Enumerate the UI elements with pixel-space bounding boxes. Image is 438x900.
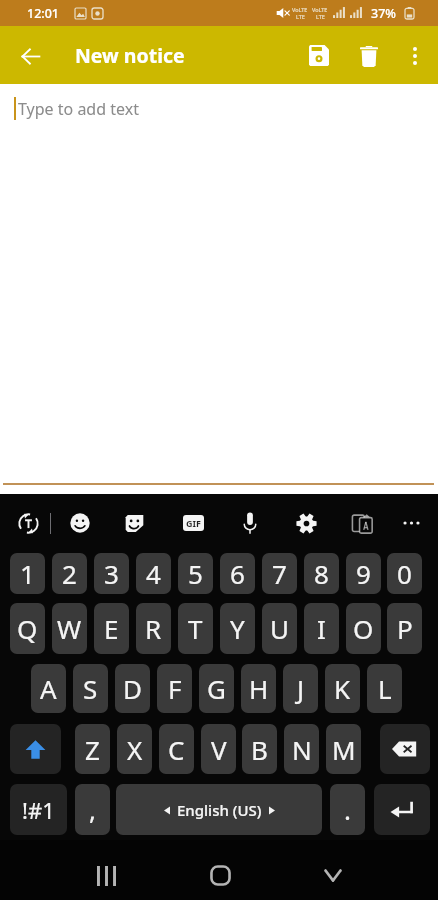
- button[interactable]: R: [136, 603, 171, 654]
- staticText: 1: [20, 556, 35, 591]
- button[interactable]: K: [325, 664, 360, 713]
- staticText: VoLTE: [312, 6, 328, 13]
- staticText: !#1: [22, 795, 55, 825]
- button[interactable]: E: [94, 603, 129, 654]
- button[interactable]: Settings: [286, 503, 326, 543]
- button[interactable]: 4: [136, 553, 171, 594]
- button[interactable]: Shift: [10, 724, 61, 774]
- staticText: New notice: [75, 42, 185, 69]
- button[interactable]: Voice input: [230, 503, 270, 543]
- button[interactable]: Emoji: [60, 503, 100, 543]
- button[interactable]: Z: [75, 724, 110, 774]
- button[interactable]: D: [115, 664, 150, 713]
- button[interactable]: G: [199, 664, 234, 713]
- button[interactable]: 1: [10, 553, 45, 594]
- staticText: .: [344, 792, 351, 827]
- button[interactable]: More: [391, 503, 431, 543]
- button[interactable]: U: [262, 603, 297, 654]
- button[interactable]: Delete: [346, 33, 392, 79]
- button[interactable]: More options: [393, 34, 437, 78]
- staticText: I: [317, 611, 326, 646]
- button[interactable]: S: [73, 664, 108, 713]
- button[interactable]: B: [242, 724, 277, 774]
- staticText: GIF: [186, 517, 201, 529]
- staticText: VoLTE: [292, 6, 308, 13]
- staticText: 0: [397, 556, 412, 591]
- button[interactable]: 8: [304, 553, 339, 594]
- staticText: LTE: [316, 13, 325, 20]
- staticText: 12:01: [27, 5, 60, 22]
- button[interactable]: Navigate up: [6, 32, 54, 80]
- staticText: U: [270, 611, 290, 646]
- button[interactable]: Enter: [374, 784, 430, 835]
- button[interactable]: V: [201, 724, 236, 774]
- button[interactable]: ,: [75, 784, 110, 835]
- staticText: Y: [230, 611, 245, 646]
- button[interactable]: X: [117, 724, 152, 774]
- button[interactable]: C: [159, 724, 194, 774]
- staticText: 5: [188, 556, 203, 591]
- staticText: G: [207, 671, 226, 706]
- staticText: S: [83, 671, 98, 706]
- button[interactable]: English (US): [116, 784, 322, 835]
- staticText: L: [378, 671, 392, 706]
- button[interactable]: Backspace: [380, 724, 430, 774]
- button[interactable]: Stickers: [114, 503, 154, 543]
- staticText: 3: [104, 556, 119, 591]
- button[interactable]: 5: [178, 553, 213, 594]
- button[interactable]: J: [283, 664, 318, 713]
- staticText: Z: [85, 732, 100, 767]
- button[interactable]: M: [326, 724, 361, 774]
- button[interactable]: N: [284, 724, 319, 774]
- staticText: B: [251, 732, 268, 767]
- button[interactable]: I: [304, 603, 339, 654]
- staticText: D: [123, 671, 142, 706]
- staticText: X: [127, 732, 143, 767]
- button[interactable]: Save: [296, 32, 342, 78]
- button[interactable]: Hide keyboard: [306, 848, 360, 900]
- staticText: E: [104, 611, 119, 646]
- staticText: K: [334, 671, 351, 706]
- staticText: V: [211, 732, 227, 767]
- staticText: 2: [62, 556, 77, 591]
- staticText: H: [249, 671, 269, 706]
- button[interactable]: Text recognition: [342, 503, 382, 543]
- button[interactable]: 0: [387, 553, 422, 594]
- staticText: 4: [146, 556, 161, 591]
- button[interactable]: 6: [220, 553, 255, 594]
- button[interactable]: 9: [346, 553, 381, 594]
- button[interactable]: W: [52, 603, 87, 654]
- staticText: C: [168, 732, 185, 767]
- staticText: Q: [17, 611, 38, 646]
- button[interactable]: O: [346, 603, 381, 654]
- button[interactable]: L: [367, 664, 402, 713]
- staticText: N: [292, 732, 312, 767]
- staticText: M: [332, 732, 356, 767]
- staticText: T: [188, 611, 203, 646]
- button[interactable]: Q: [10, 603, 45, 654]
- staticText: English (US): [177, 800, 262, 820]
- button[interactable]: F: [157, 664, 192, 713]
- staticText: LTE: [296, 13, 305, 20]
- button[interactable]: Recent apps: [79, 849, 133, 900]
- staticText: 7: [272, 556, 287, 591]
- button[interactable]: GIF: [173, 503, 213, 543]
- button[interactable]: A: [31, 664, 66, 713]
- staticText: Type to add text: [18, 98, 139, 120]
- button[interactable]: T: [178, 603, 213, 654]
- button[interactable]: Translate: [8, 503, 48, 543]
- staticText: A: [40, 671, 57, 706]
- staticText: 6: [230, 556, 245, 591]
- button[interactable]: 2: [52, 553, 87, 594]
- button[interactable]: Y: [220, 603, 255, 654]
- staticText: R: [145, 611, 162, 646]
- button[interactable]: H: [241, 664, 276, 713]
- staticText: W: [57, 611, 82, 646]
- button[interactable]: .: [330, 784, 365, 835]
- button[interactable]: Home: [193, 848, 247, 900]
- button[interactable]: !#1: [10, 784, 67, 835]
- button[interactable]: 7: [262, 553, 297, 594]
- button[interactable]: 3: [94, 553, 129, 594]
- staticText: J: [297, 671, 305, 706]
- button[interactable]: P: [387, 603, 422, 654]
